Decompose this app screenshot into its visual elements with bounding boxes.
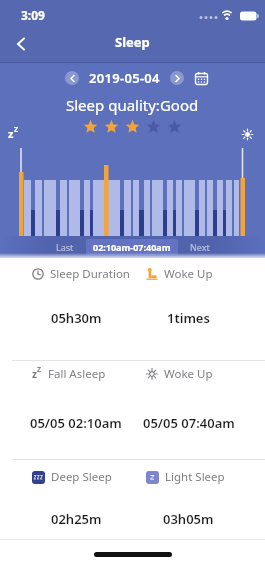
staticText: Deep Sleep [51,469,112,485]
staticText: Sleep [115,33,150,51]
staticText: 02:10am-07:40am [93,241,171,253]
staticText: 02h25m [51,510,102,528]
staticText: 1times [167,309,210,327]
staticText: 05/05 02:10am [30,414,122,432]
staticText: Z [37,365,42,375]
button[interactable]: 02:10am-07:40am [86,239,178,255]
staticText: Z [14,125,19,135]
staticText: Woke Up [164,266,213,282]
staticText: Woke Up [164,366,213,382]
button[interactable] [65,71,79,85]
staticText: 2019-05-04 [89,69,160,87]
button[interactable] [10,33,32,55]
staticText: Sleep quality:Good [66,95,199,115]
button[interactable]: Last [56,241,74,253]
button[interactable]: Next [190,241,210,253]
staticText: Fall Asleep [48,366,106,382]
staticText: Light Sleep [165,469,225,485]
button[interactable] [170,71,184,85]
staticText: 05h30m [51,309,102,327]
staticText: z [8,126,14,141]
staticText: 03h05m [163,510,214,528]
staticText: Sleep Duration [50,266,130,282]
staticText: 3:09 [21,7,45,23]
staticText: 05/05 07:40am [143,414,235,432]
button[interactable] [194,71,209,86]
staticText: z [32,367,37,381]
